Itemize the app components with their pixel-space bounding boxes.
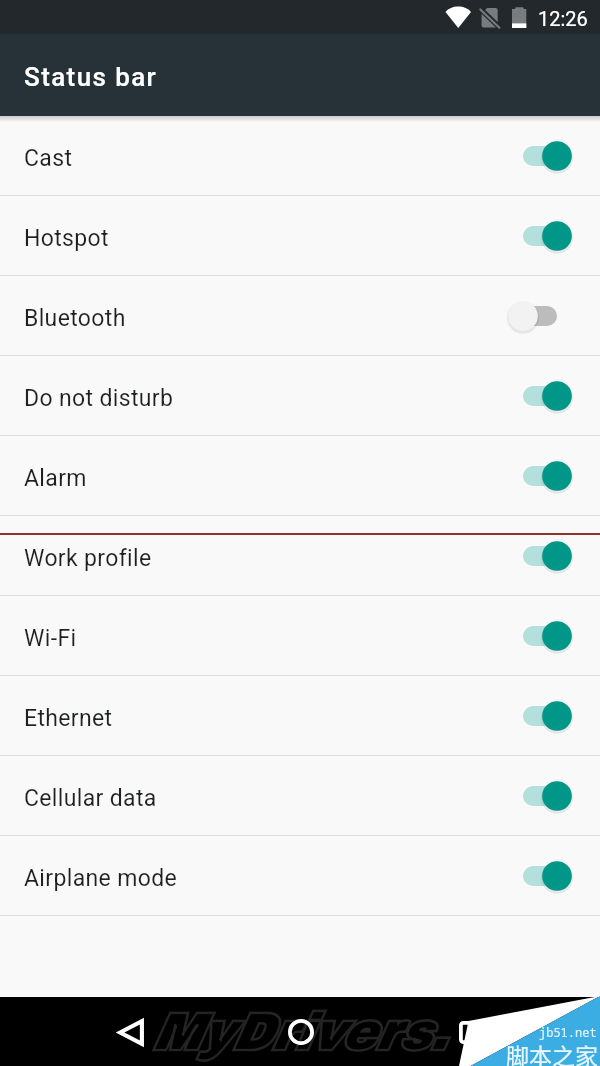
button[interactable]: Alarm [0, 436, 600, 516]
staticText: Cast [24, 145, 73, 172]
staticText: jb51.net [539, 1024, 597, 1040]
staticText: 脚本之家 [506, 1038, 598, 1066]
button[interactable]: Home [269, 1000, 333, 1064]
staticText: MyDrivers. [151, 1005, 446, 1060]
button[interactable]: Recent apps [438, 1000, 502, 1064]
staticText: Do not disturb [24, 385, 174, 412]
button[interactable]: Airplane mode [0, 836, 600, 916]
staticText: Ethernet [24, 705, 113, 732]
staticText: Alarm [24, 465, 87, 492]
button[interactable]: Hotspot [0, 196, 600, 276]
button[interactable]: Do not disturb [0, 356, 600, 436]
button[interactable]: Work profile [0, 516, 600, 596]
staticText: Cellular data [24, 785, 157, 812]
staticText: Bluetooth [24, 305, 126, 332]
button[interactable]: Ethernet [0, 676, 600, 756]
button[interactable]: Bluetooth [0, 276, 600, 356]
button[interactable]: Cast [0, 116, 600, 196]
staticText: 12:26 [538, 7, 588, 30]
staticText: Work profile [24, 545, 152, 572]
button[interactable]: Wi-Fi [0, 596, 600, 676]
staticText: Airplane mode [24, 865, 178, 892]
button[interactable]: Cellular data [0, 756, 600, 836]
button[interactable]: Back [99, 1000, 163, 1064]
staticText: Wi-Fi [24, 625, 77, 652]
staticText: Status bar [24, 62, 158, 92]
staticText: Hotspot [24, 225, 109, 252]
